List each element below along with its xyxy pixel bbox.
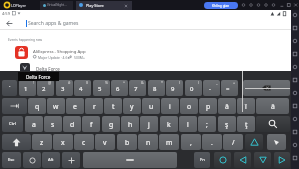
button[interactable]: 9 (166, 80, 183, 96)
button[interactable]: , (181, 134, 201, 150)
button[interactable]: a (25, 116, 43, 132)
button[interactable]: m (159, 134, 179, 150)
staticText: n (146, 138, 151, 147)
staticText: ş (225, 120, 229, 129)
button[interactable]: j (140, 116, 158, 132)
button[interactable]: ş (218, 116, 236, 132)
staticText: , (190, 138, 192, 147)
staticText: Esc (8, 157, 15, 163)
button[interactable] (0, 17, 291, 29)
button[interactable]: x (53, 134, 73, 150)
button[interactable]: ă (218, 98, 236, 114)
staticText: p (206, 102, 211, 111)
button[interactable]: ţ (237, 116, 255, 132)
staticText: + (233, 80, 236, 85)
button[interactable]: p (199, 98, 217, 114)
button[interactable]: s (44, 116, 62, 132)
button[interactable]: . (202, 134, 222, 150)
button[interactable] (243, 80, 290, 96)
staticText: s (51, 120, 55, 129)
staticText: 4:59 (2, 11, 10, 16)
button[interactable]: c (74, 134, 94, 150)
button[interactable]: 3 (56, 80, 73, 96)
button[interactable] (2, 134, 31, 150)
button[interactable] (234, 152, 251, 168)
button[interactable]: 6 (111, 80, 128, 96)
button[interactable]: t (104, 98, 122, 114)
staticText: Search apps & games (28, 20, 79, 27)
button[interactable]: i (161, 98, 179, 114)
button[interactable]: / (223, 134, 243, 150)
button[interactable]: b (117, 134, 137, 150)
button[interactable] (0, 63, 291, 72)
button[interactable]: ` (2, 80, 17, 96)
staticText: 2 (42, 85, 46, 93)
button[interactable]: h (121, 116, 139, 132)
button[interactable]: n (138, 134, 158, 150)
staticText: r (93, 102, 96, 111)
staticText: / (232, 138, 235, 147)
button[interactable]: 5 (93, 80, 110, 96)
button[interactable] (214, 152, 231, 168)
staticText: e (73, 102, 77, 111)
button[interactable]: ; (198, 116, 216, 132)
button[interactable]: - (203, 80, 220, 96)
button[interactable] (23, 152, 41, 168)
staticText: m (166, 138, 173, 147)
button[interactable] (83, 152, 177, 168)
button[interactable]: u (142, 98, 160, 114)
button[interactable]: 0 (185, 80, 202, 96)
staticText: LDPlayer (11, 3, 26, 8)
button[interactable]: f (82, 116, 100, 132)
staticText: j (148, 120, 150, 129)
button[interactable]: o (180, 98, 198, 114)
button[interactable]: y (123, 98, 141, 114)
button[interactable] (2, 98, 27, 114)
staticText: 3 (61, 85, 65, 93)
button[interactable]: g (102, 116, 120, 132)
staticText: 1 (24, 85, 28, 93)
button[interactable] (254, 152, 271, 168)
button[interactable] (256, 116, 290, 132)
staticText: q (35, 102, 40, 111)
staticText: Events happening now (8, 38, 43, 42)
button[interactable] (245, 134, 263, 150)
button[interactable] (62, 152, 80, 168)
button[interactable]: â (256, 98, 289, 114)
button[interactable]: q (28, 98, 46, 114)
button[interactable]: Fn (194, 152, 210, 168)
staticText: ! (33, 80, 34, 85)
button[interactable]: v (95, 134, 115, 150)
staticText: ţ (245, 120, 248, 129)
button[interactable]: k (160, 116, 178, 132)
button[interactable]: w (47, 98, 65, 114)
button[interactable]: d (63, 116, 81, 132)
staticText: v (103, 138, 107, 147)
button[interactable]: z (32, 134, 52, 150)
staticText: i (169, 102, 171, 111)
staticText: u (149, 102, 154, 111)
button[interactable]: Esc (2, 152, 21, 168)
staticText: ` (9, 85, 11, 92)
button[interactable]: Không gian (204, 2, 238, 9)
button[interactable]: r (85, 98, 103, 114)
button[interactable] (0, 44, 291, 62)
button[interactable]: Alt (42, 152, 60, 168)
button[interactable]: e (66, 98, 84, 114)
button[interactable] (40, 1, 73, 10)
button[interactable]: = (221, 80, 238, 96)
button[interactable]: 8 (148, 80, 165, 96)
button[interactable]: 4 (74, 80, 91, 96)
button[interactable]: î (237, 98, 255, 114)
staticText: 6 (116, 85, 120, 93)
staticText: @ (48, 80, 52, 85)
button[interactable]: l (179, 116, 197, 132)
button[interactable] (267, 134, 286, 150)
button[interactable]: 2 (37, 80, 54, 96)
button[interactable]: 7 (129, 80, 146, 96)
button[interactable]: Ctrl (2, 116, 23, 132)
staticText: = (226, 85, 230, 93)
button[interactable] (274, 152, 290, 168)
button[interactable]: 1 (19, 80, 36, 96)
button[interactable] (76, 1, 132, 10)
